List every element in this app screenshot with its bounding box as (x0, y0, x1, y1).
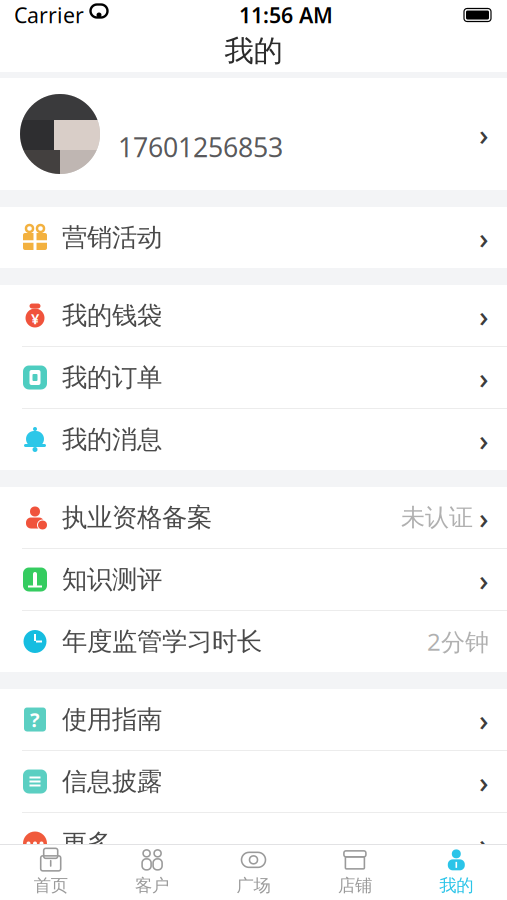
button[interactable]: 我的订单 (0, 347, 507, 408)
staticText: 信息披露 (62, 766, 162, 797)
staticText: › (479, 700, 489, 739)
button[interactable]: 17601256853 (0, 78, 507, 190)
staticText: 营销活动 (62, 222, 162, 253)
staticText: ? (30, 706, 40, 733)
staticText: › (479, 762, 489, 801)
staticText: ¥ (31, 309, 39, 328)
button[interactable]: ¥ (0, 285, 507, 346)
staticText: 2分钟 (427, 626, 489, 657)
staticText: 我的 (224, 33, 282, 69)
staticText: 我的 (439, 875, 473, 896)
staticText: › (479, 498, 489, 537)
staticText: 广场 (236, 875, 270, 896)
button[interactable]: 信息披露 (0, 751, 507, 812)
staticText: 执业资格备案 (62, 502, 212, 533)
staticText: › (479, 358, 489, 397)
button[interactable]: 店铺 (304, 845, 406, 900)
button[interactable]: 首页 (0, 845, 101, 900)
button[interactable]: 我的 (406, 845, 507, 900)
button[interactable]: 我的消息 (0, 409, 507, 470)
button[interactable]: 营销活动 (0, 207, 507, 268)
staticText: 11:56 AM (239, 1, 333, 29)
staticText: 我的钱袋 (62, 300, 162, 331)
staticText: 店铺 (338, 875, 372, 896)
button[interactable]: 更多 (0, 813, 507, 874)
button[interactable]: 广场 (203, 845, 304, 900)
staticText: Carrier (14, 1, 84, 29)
staticText: 我的订单 (62, 362, 162, 393)
staticText: 首页 (34, 875, 68, 896)
staticText: 我的消息 (62, 424, 162, 455)
button[interactable]: 执业资格备案 (0, 487, 507, 548)
button[interactable]: 知识测评 (0, 549, 507, 610)
button[interactable]: 年度监管学习时长 (0, 611, 507, 672)
staticText: 年度监管学习时长 (62, 626, 262, 657)
staticText: › (479, 218, 489, 257)
staticText: 使用指南 (62, 704, 162, 735)
staticText: › (479, 296, 489, 335)
staticText: 17601256853 (118, 129, 283, 165)
staticText: › (479, 560, 489, 599)
staticText: › (479, 824, 489, 863)
staticText: 客户 (135, 875, 169, 896)
staticText: 未认证 (401, 503, 473, 532)
staticText: 更多 (62, 828, 112, 859)
staticText: › (479, 114, 489, 153)
button[interactable]: 客户 (101, 845, 203, 900)
staticText: 知识测评 (62, 564, 162, 595)
button[interactable]: ? (0, 689, 507, 750)
staticText: › (479, 420, 489, 459)
